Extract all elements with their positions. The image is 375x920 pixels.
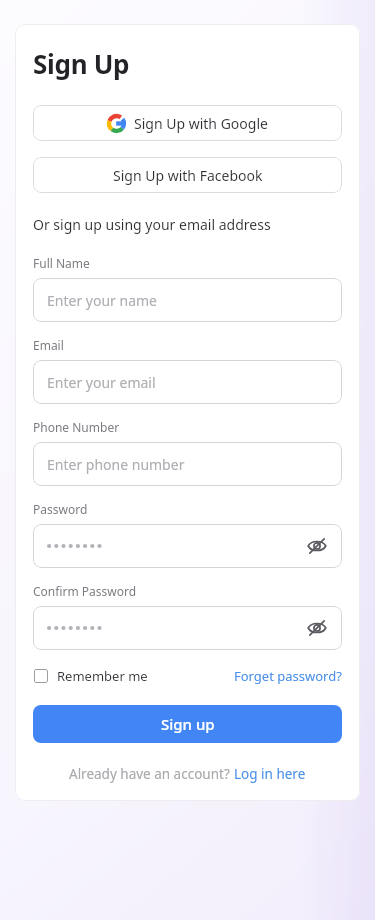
staticText: Confirm Password xyxy=(33,583,137,599)
staticText: Forget password? xyxy=(234,667,342,685)
button[interactable]: Log in here xyxy=(234,765,306,783)
button[interactable]: Show password xyxy=(33,524,342,568)
staticText: Full Name xyxy=(33,255,90,271)
staticText: Remember me xyxy=(57,667,148,685)
staticText: Enter your email xyxy=(47,373,156,392)
staticText: Sign up xyxy=(161,714,215,734)
staticText: Email xyxy=(33,337,64,353)
staticText: Enter phone number xyxy=(47,455,185,474)
button[interactable]: Show password xyxy=(304,615,330,641)
button[interactable]: Sign Up with Facebook xyxy=(33,157,342,193)
staticText: Password xyxy=(33,501,88,517)
button[interactable]: Show password xyxy=(304,533,330,559)
staticText: Sign Up with Facebook xyxy=(113,166,263,185)
button[interactable]: Forget password? xyxy=(234,664,342,688)
staticText: Or sign up using your email address xyxy=(33,215,271,234)
button[interactable]: Enter your name xyxy=(33,278,342,322)
button[interactable]: Enter your email xyxy=(33,360,342,404)
button[interactable]: Enter phone number xyxy=(33,442,342,486)
button[interactable]: Sign Up with Google xyxy=(33,105,342,141)
staticText: Log in here xyxy=(234,765,306,783)
button[interactable]: Show password xyxy=(33,606,342,650)
staticText: Enter your name xyxy=(47,291,157,310)
button[interactable]: Sign up xyxy=(33,705,342,743)
staticText: Already have an account? xyxy=(69,765,234,783)
staticText: Sign Up with Google xyxy=(134,114,268,133)
staticText: Sign Up xyxy=(33,46,130,81)
button[interactable]: Remember me xyxy=(33,664,149,688)
staticText: Phone Number xyxy=(33,419,120,435)
